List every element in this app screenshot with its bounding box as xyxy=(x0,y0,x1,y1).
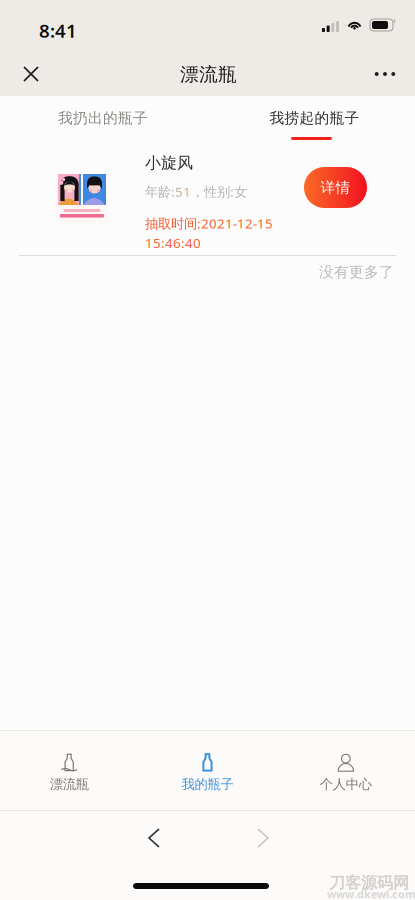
staticText: 我捞起的瓶子 xyxy=(269,109,359,127)
staticText: 我的瓶子 xyxy=(181,776,233,792)
staticText: 漂流瓶 xyxy=(180,63,237,86)
button[interactable]: More options xyxy=(351,50,415,98)
staticText: 没有更多了 xyxy=(319,263,394,281)
button[interactable]: Close xyxy=(1,48,63,100)
button[interactable]: 漂流瓶 xyxy=(0,731,138,810)
button[interactable]: 我捞起的瓶子 xyxy=(207,96,415,142)
staticText: 漂流瓶 xyxy=(50,776,89,792)
staticText: 8:41 xyxy=(39,18,77,43)
button[interactable]: Back xyxy=(124,812,184,864)
button[interactable]: 详情 xyxy=(304,167,367,208)
staticText: 抽取时间:2021-12-15 xyxy=(145,214,273,232)
staticText: 年龄:51，性别:女 xyxy=(145,183,247,200)
staticText: 详情 xyxy=(320,178,350,196)
staticText: 我扔出的瓶子 xyxy=(58,109,148,127)
staticText: 个人中心 xyxy=(320,776,372,792)
staticText: 小旋风 xyxy=(145,153,193,173)
staticText: www.dkewl.com xyxy=(327,887,415,900)
button[interactable]: 我的瓶子 xyxy=(138,731,277,810)
staticText: 15:46:40 xyxy=(145,234,201,252)
staticText: 刀客源码网 xyxy=(329,873,409,893)
button[interactable]: Forward xyxy=(233,812,293,864)
button[interactable]: 我扔出的瓶子 xyxy=(0,96,207,142)
button[interactable]: 个人中心 xyxy=(277,731,415,810)
